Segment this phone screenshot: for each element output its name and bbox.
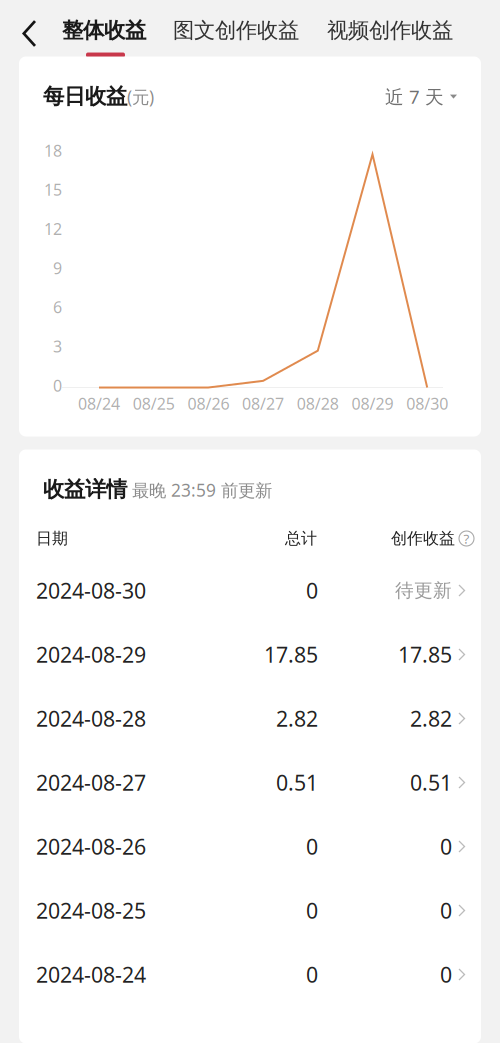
staticText: 创作收益 bbox=[391, 529, 455, 548]
button[interactable]: 视频创作收益 bbox=[327, 0, 455, 56]
staticText: 2024-08-29 bbox=[36, 640, 146, 669]
staticText: 0 bbox=[53, 375, 62, 396]
staticText: 最晚 23:59 前更新 bbox=[127, 479, 272, 502]
staticText: 2024-08-25 bbox=[36, 896, 146, 925]
button[interactable]: 2024-08-26 bbox=[19, 814, 481, 878]
staticText: 0 bbox=[306, 832, 318, 861]
button[interactable]: 2024-08-28 bbox=[19, 686, 481, 750]
button[interactable]: 近 7 天 bbox=[385, 84, 457, 109]
staticText: 2024-08-27 bbox=[36, 768, 146, 797]
staticText: 0 bbox=[306, 960, 318, 989]
staticText: 日期 bbox=[36, 529, 68, 548]
staticText: 9 bbox=[53, 257, 62, 278]
staticText: 2024-08-26 bbox=[36, 832, 146, 861]
staticText: 08/27 bbox=[242, 393, 284, 414]
staticText: 0 bbox=[306, 896, 318, 925]
staticText: 待更新 bbox=[395, 579, 452, 602]
staticText: 2024-08-28 bbox=[36, 704, 146, 733]
staticText: 12 bbox=[44, 218, 62, 239]
staticText: 08/26 bbox=[187, 393, 229, 414]
button[interactable]: 2024-08-25 bbox=[19, 878, 481, 942]
staticText: 2024-08-30 bbox=[36, 576, 146, 605]
button[interactable]: 图文创作收益 bbox=[173, 0, 301, 56]
staticText: 图文创作收益 bbox=[173, 17, 299, 44]
button[interactable]: 2024-08-24 bbox=[19, 942, 481, 1006]
staticText: 18 bbox=[44, 140, 62, 161]
staticText: 2.82 bbox=[410, 704, 452, 733]
staticText: 0 bbox=[440, 960, 452, 989]
staticText: 0.51 bbox=[410, 768, 452, 797]
button[interactable]: 2024-08-27 bbox=[19, 750, 481, 814]
staticText: 17.85 bbox=[398, 640, 452, 669]
staticText: 0 bbox=[440, 832, 452, 861]
staticText: 08/25 bbox=[133, 393, 175, 414]
staticText: (元) bbox=[127, 85, 154, 108]
staticText: 08/24 bbox=[78, 393, 120, 414]
staticText: 08/28 bbox=[297, 393, 339, 414]
staticText: 17.85 bbox=[264, 640, 318, 669]
staticText: 08/30 bbox=[406, 393, 448, 414]
staticText: 收益详情 bbox=[43, 476, 127, 503]
staticText: 总计 bbox=[285, 529, 317, 548]
staticText: 整体收益 bbox=[62, 17, 146, 44]
staticText: 15 bbox=[44, 179, 62, 200]
staticText: ? bbox=[463, 530, 469, 547]
button[interactable]: Back bbox=[7, 11, 51, 55]
staticText: 每日收益 bbox=[43, 83, 127, 110]
staticText: 2024-08-24 bbox=[36, 960, 146, 989]
staticText: 2.82 bbox=[276, 704, 318, 733]
staticText: 0 bbox=[440, 896, 452, 925]
staticText: 08/29 bbox=[351, 393, 393, 414]
button[interactable]: 整体收益 bbox=[62, 0, 148, 56]
staticText: 视频创作收益 bbox=[327, 17, 453, 44]
button[interactable]: 2024-08-30 bbox=[19, 558, 481, 622]
staticText: 3 bbox=[53, 336, 62, 357]
staticText: 6 bbox=[53, 296, 62, 318]
button[interactable]: 2024-08-29 bbox=[19, 622, 481, 686]
staticText: 近 7 天 bbox=[385, 84, 444, 109]
staticText: 0 bbox=[306, 576, 318, 605]
staticText: 0.51 bbox=[276, 768, 318, 797]
